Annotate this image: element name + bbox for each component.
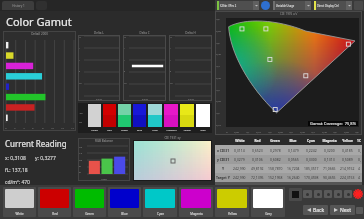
staticText: 100% [101,178,107,181]
staticText: -5 [123,70,125,73]
button[interactable]: Tool 5 [344,190,352,198]
staticText: -10 [123,82,127,85]
button[interactable]: Variable Usage [273,1,311,10]
staticText: Green [85,212,94,216]
button[interactable]: Cyan [143,187,177,217]
staticText: 49,8192 [251,166,264,171]
staticText: 0,1 [246,131,250,134]
button[interactable]: Tool 2 [314,190,322,198]
staticText: 170,4598 [304,175,319,180]
staticText: Current Reading [5,138,67,149]
staticText: 0,05 [234,131,239,134]
staticText: 0,6 [216,18,220,21]
staticText: 0,3106 [252,157,263,162]
staticText: 0,6082 [270,157,281,162]
staticText: 224,3153 [340,175,355,180]
button[interactable]: Grey [251,187,285,217]
staticText: 0,2 [268,131,272,134]
staticText: 0,35 [216,77,221,80]
button[interactable]: Record [353,189,363,199]
staticText: -10 [78,82,82,85]
button[interactable]: Green [118,104,131,132]
staticText: 0,55 [216,30,221,33]
staticText: Delta L [78,31,120,35]
button[interactable]: X-Rite i1Pro 2 [217,1,259,10]
staticText: 100 [78,159,82,162]
staticText: 0 [226,131,228,134]
staticText: 0,4185 [342,148,353,153]
button[interactable]: y CIE31 [215,155,362,164]
button[interactable]: Cyan [148,104,162,132]
staticText: 10 [51,127,54,130]
button[interactable]: White [3,187,36,217]
button[interactable]: Red [103,104,116,132]
staticText: 0,2 [216,112,220,115]
staticText: Yellow [183,128,191,131]
staticText: White [91,128,98,131]
staticText: Red [254,139,261,143]
button[interactable]: Tool 3 [324,190,332,198]
staticText: White [15,212,24,216]
button[interactable]: Yellow [215,187,249,217]
button[interactable]: Measure [261,1,270,10]
staticText: 0,25 [278,131,283,134]
staticText: 0,2242 [306,148,317,153]
staticText: 0,3 [289,131,293,134]
button[interactable]: Magenta [164,104,178,132]
staticText: Trg [79,112,83,115]
button[interactable]: Green [73,187,106,217]
button[interactable]: Magenta [179,187,213,217]
staticText: 0, [358,157,361,162]
staticText: 0,55 [344,131,349,134]
staticText: Target Y [216,175,230,180]
staticText: Y [222,166,225,171]
staticText: 0,3 [216,89,220,92]
button[interactable]: History 1 [2,1,34,10]
button[interactable]: Next [330,205,355,215]
staticText: 90 [78,165,81,168]
staticText: x: 0,3108 [5,155,26,162]
staticText: 0,3114 [234,148,245,153]
staticText: 0,4 [311,131,315,134]
button[interactable]: Grey [196,104,210,132]
staticText: 242,990 [233,166,246,171]
staticText: 0,3279 [234,157,245,162]
staticText: 2 [14,127,16,130]
button[interactable]: Y [215,164,362,173]
staticText: 90,4655 [323,175,336,180]
staticText: 5 [78,47,80,50]
staticText: 0,2978 [270,148,281,153]
staticText: Cyan [152,128,158,131]
button[interactable]: Red [38,187,71,217]
button[interactable]: Tool 1 [303,190,312,198]
button[interactable]: Direct Display Ctrl [314,1,352,10]
button[interactable]: Blue [133,104,146,132]
button[interactable]: Yellow [180,104,194,132]
staticText: Back [313,207,325,214]
staticText: 0,3200 [324,148,335,153]
button[interactable]: Target Y [215,173,362,182]
staticText: 5 [123,47,125,50]
staticText: 120 [78,146,82,149]
staticText: 8 [42,127,44,130]
staticText: X-Rite i1Pro 2 [220,4,237,8]
button[interactable]: Blue [108,187,141,217]
staticText: 0,0565 [288,157,299,162]
button[interactable]: x CIE31 [215,145,362,155]
staticText: 4 [358,175,360,180]
staticText: 5 [169,47,171,50]
staticText: 0,5 [216,42,220,45]
staticText: Red [107,128,112,131]
button[interactable]: Tool 4 [334,190,342,198]
staticText: 10 [123,36,126,39]
staticText: Magenta [166,128,177,131]
button[interactable]: White [88,104,101,132]
staticText: 110 [78,152,82,155]
staticText: Cyan [157,212,164,216]
staticText: Gamut Coverage: 75,8% [310,121,356,126]
button[interactable]: Back [303,205,328,215]
